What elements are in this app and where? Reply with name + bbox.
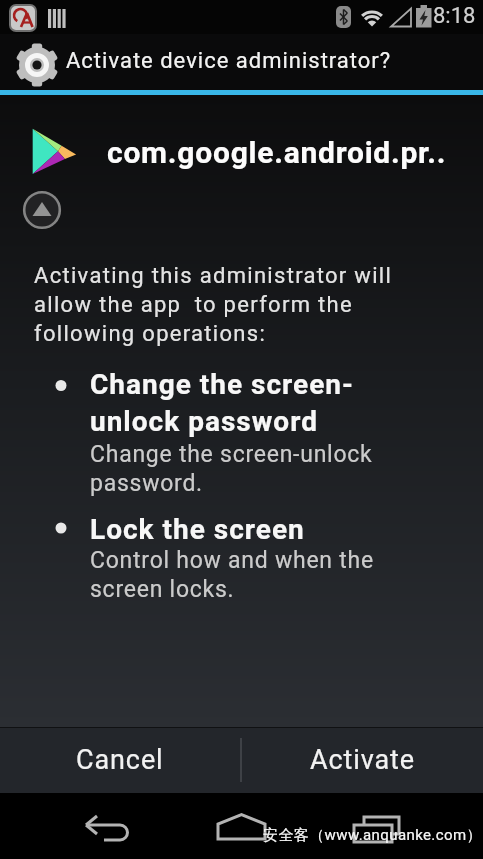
staticText: Activating this administrator will allow… bbox=[34, 263, 393, 346]
staticText: Change the screen- unlock password bbox=[90, 368, 354, 438]
staticText: Lock the screen bbox=[90, 513, 305, 546]
staticText: com.google.android.pr.. bbox=[107, 135, 447, 170]
button[interactable]: Activate bbox=[242, 727, 483, 793]
button[interactable]: Cancel bbox=[0, 727, 240, 793]
button[interactable] bbox=[70, 801, 160, 853]
staticText: Activate device administrator? bbox=[66, 48, 392, 74]
button[interactable] bbox=[196, 801, 286, 853]
staticText: Activate bbox=[310, 744, 416, 776]
staticText: Cancel bbox=[76, 744, 164, 776]
staticText: Control how and when the screen locks. bbox=[90, 547, 374, 603]
button[interactable] bbox=[322, 801, 412, 853]
button[interactable] bbox=[23, 191, 61, 229]
staticText: 8:18 bbox=[433, 3, 476, 29]
staticText: 安全客（www.anquanke.com） bbox=[263, 826, 482, 845]
staticText: Change the screen-unlock password. bbox=[90, 441, 373, 497]
